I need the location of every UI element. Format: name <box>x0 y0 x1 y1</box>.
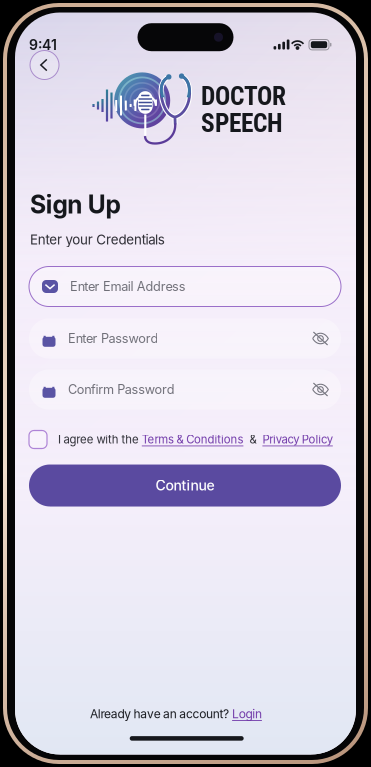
button[interactable]: Back <box>30 50 59 79</box>
button[interactable]: Terms & Conditions <box>142 433 243 446</box>
button[interactable]: Enter Email Address <box>29 266 341 306</box>
staticText: Enter Email Address <box>70 279 186 294</box>
button[interactable]: Privacy Policy <box>262 433 333 446</box>
staticText: Continue <box>155 477 214 494</box>
button[interactable]: Confirm Password <box>29 369 341 409</box>
staticText: Sign Up <box>30 189 120 219</box>
button[interactable]: Agree to Terms and Privacy Policy <box>29 430 47 448</box>
staticText: & <box>243 433 262 446</box>
staticText: Privacy Policy <box>262 433 333 446</box>
staticText: Confirm Password <box>68 382 175 397</box>
staticText: I agree with the <box>58 433 142 446</box>
button[interactable]: Enter Password <box>29 318 341 358</box>
button[interactable]: Login <box>232 706 262 721</box>
staticText: Already have an account? <box>90 706 229 721</box>
staticText: Enter Password <box>68 331 158 346</box>
staticText: 9:41 <box>29 36 57 53</box>
staticText: Login <box>232 706 262 721</box>
staticText: Enter your Credentials <box>30 231 165 248</box>
staticText: DOCTOR <box>201 81 286 111</box>
button[interactable]: Continue <box>29 464 341 506</box>
staticText: Terms & Conditions <box>142 433 243 446</box>
staticText: SPEECH <box>201 108 283 138</box>
